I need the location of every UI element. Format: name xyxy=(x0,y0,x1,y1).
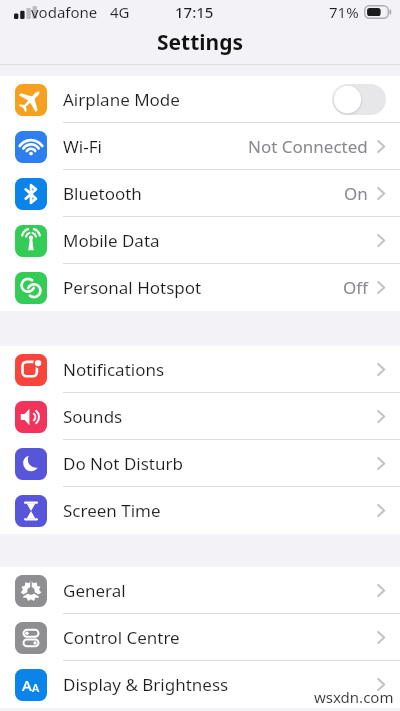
button[interactable]: Do Not Disturb xyxy=(0,440,400,487)
staticText: 71% xyxy=(329,2,359,22)
button[interactable]: Airplane Mode xyxy=(0,76,400,123)
button[interactable]: Bluetooth xyxy=(0,170,400,217)
staticText: Sounds xyxy=(63,405,123,428)
staticText: Settings xyxy=(157,28,244,57)
staticText: Personal Hotspot xyxy=(63,276,202,299)
staticText: Do Not Disturb xyxy=(63,452,183,475)
staticText: Wi-Fi xyxy=(63,135,102,158)
button[interactable]: Mobile Data xyxy=(0,217,400,264)
button[interactable]: Airplane Mode toggle xyxy=(332,84,386,115)
button[interactable]: Notifications xyxy=(0,346,400,393)
button[interactable]: Screen Time xyxy=(0,487,400,534)
button[interactable]: Control Centre xyxy=(0,614,400,661)
staticText: Notifications xyxy=(63,358,165,381)
staticText: Control Centre xyxy=(63,626,180,649)
staticText: vodafone xyxy=(31,2,98,22)
staticText: 17:15 xyxy=(175,2,214,22)
staticText: wsxdn.com xyxy=(314,687,394,707)
button[interactable]: Personal Hotspot xyxy=(0,264,400,311)
button[interactable]: General xyxy=(0,567,400,614)
staticText: A xyxy=(22,675,32,695)
staticText: Bluetooth xyxy=(63,182,142,205)
staticText: Mobile Data xyxy=(63,229,160,252)
staticText: Airplane Mode xyxy=(63,88,180,111)
staticText: Not Connected xyxy=(248,135,368,158)
button[interactable]: A xyxy=(0,661,400,708)
staticText: Screen Time xyxy=(63,499,161,522)
staticText: On xyxy=(344,182,368,205)
staticText: Display & Brightness xyxy=(63,673,229,696)
staticText: Off xyxy=(343,276,368,299)
button[interactable]: Sounds xyxy=(0,393,400,440)
button[interactable]: Wi-Fi xyxy=(0,123,400,170)
staticText: 4G xyxy=(110,2,130,22)
staticText: General xyxy=(63,579,126,602)
staticText: A xyxy=(32,680,40,695)
